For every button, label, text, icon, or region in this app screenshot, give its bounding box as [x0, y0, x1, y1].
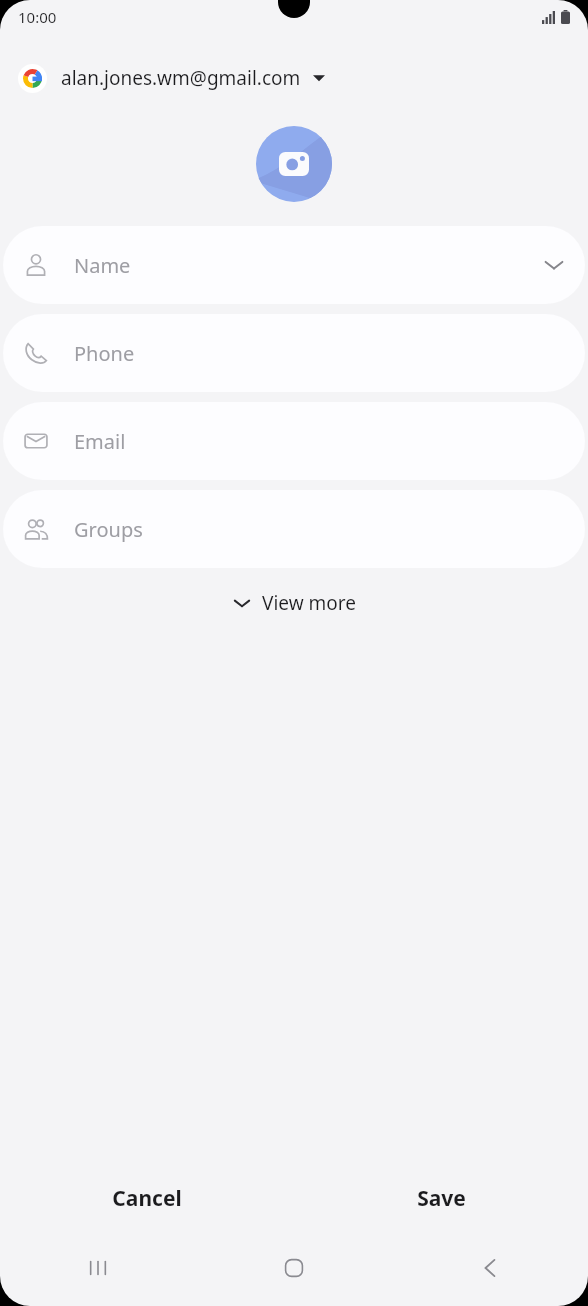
staticText: View more: [262, 590, 356, 616]
button[interactable]: Email: [3, 402, 585, 480]
button[interactable]: View more: [216, 582, 372, 624]
staticText: Name: [74, 252, 543, 279]
button[interactable]: alan.jones.wm@gmail.com: [0, 56, 588, 100]
button[interactable]: Save: [294, 1170, 588, 1226]
staticText: 10:00: [18, 7, 57, 27]
button[interactable]: Back: [392, 1244, 588, 1292]
button[interactable]: Add photo: [256, 126, 332, 202]
staticText: Save: [417, 1184, 466, 1213]
button[interactable]: Recent apps: [0, 1244, 196, 1292]
staticText: Cancel: [112, 1184, 182, 1213]
staticText: Groups: [74, 516, 565, 543]
staticText: Email: [74, 428, 565, 455]
staticText: alan.jones.wm@gmail.com: [61, 65, 301, 91]
button[interactable]: Groups: [3, 490, 585, 568]
button[interactable]: Home: [196, 1244, 392, 1292]
button[interactable]: Phone: [3, 314, 585, 392]
button[interactable]: Cancel: [0, 1170, 294, 1226]
staticText: Phone: [74, 340, 565, 367]
button[interactable]: Name: [3, 226, 585, 304]
